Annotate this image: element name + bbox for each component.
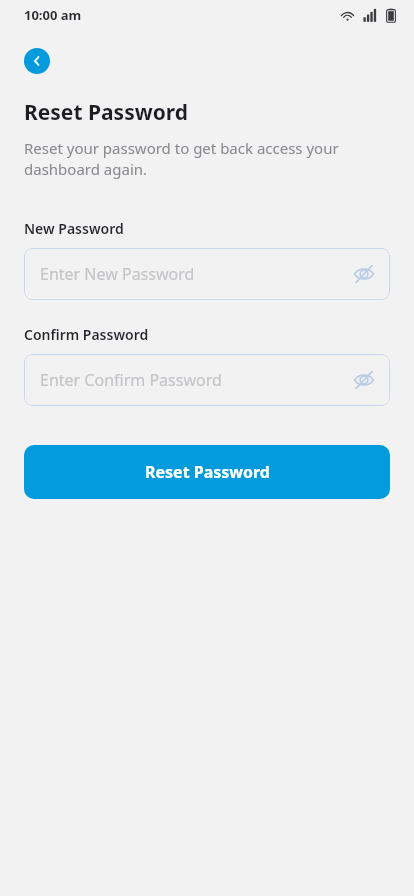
staticText: Enter Confirm Password	[40, 369, 351, 391]
staticText: Confirm Password	[24, 325, 149, 344]
button[interactable]: Enter Confirm Password	[24, 354, 390, 406]
button[interactable]: Reset Password	[24, 445, 390, 499]
button[interactable]: Show new password	[351, 261, 377, 287]
button[interactable]: Show confirm password	[351, 367, 377, 393]
button[interactable]: Enter New Password	[24, 248, 390, 300]
staticText: Reset Password	[145, 461, 270, 483]
staticText: Reset Password	[24, 98, 189, 127]
staticText: 10:00 am	[24, 6, 82, 24]
button[interactable]: Back	[24, 48, 50, 74]
staticText: Enter New Password	[40, 263, 351, 285]
staticText: New Password	[24, 219, 124, 238]
staticText: Reset your password to get back access y…	[24, 138, 339, 180]
